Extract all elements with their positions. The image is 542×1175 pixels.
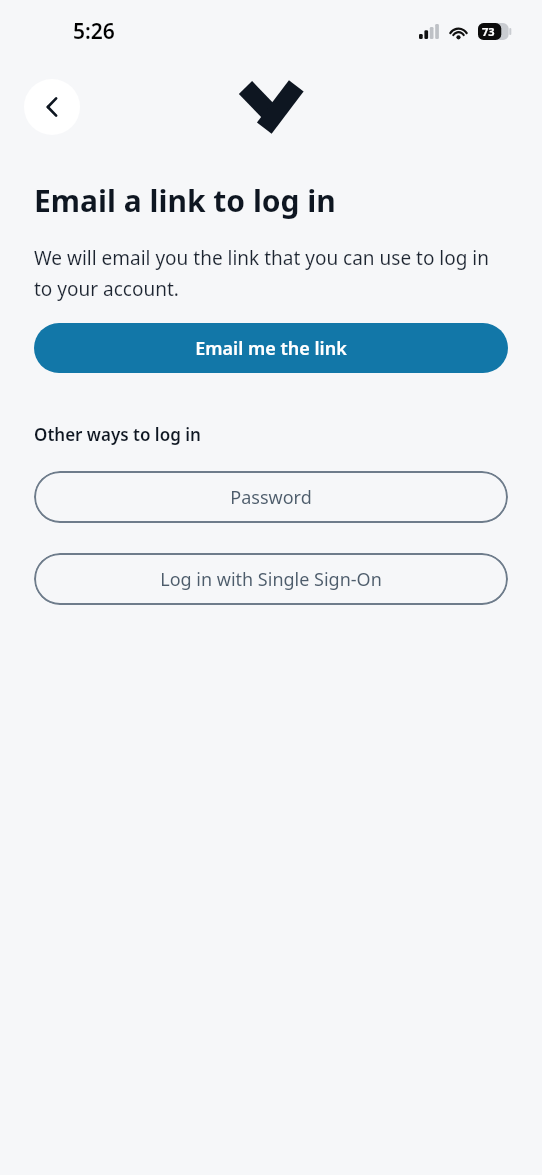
staticText: Email a link to log in	[34, 180, 336, 221]
staticText: 5:26	[73, 17, 115, 46]
button[interactable]: Email me the link	[34, 323, 508, 373]
staticText: Password	[230, 485, 312, 510]
staticText: Other ways to log in	[34, 423, 201, 446]
button[interactable]: Log in with Single Sign-On	[34, 553, 508, 605]
staticText: We will email you the link that you can …	[34, 245, 512, 301]
staticText: 73	[482, 24, 495, 39]
button[interactable]: Password	[34, 471, 508, 523]
staticText: Log in with Single Sign-On	[160, 567, 382, 592]
staticText: Email me the link	[195, 336, 347, 361]
button[interactable]: Back	[24, 79, 80, 135]
